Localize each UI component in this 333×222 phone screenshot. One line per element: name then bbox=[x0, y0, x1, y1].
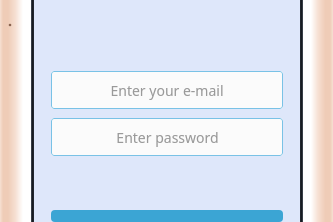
staticText: Enter password bbox=[116, 128, 219, 147]
button[interactable]: Enter password bbox=[51, 118, 283, 156]
staticText: Enter your e-mail bbox=[110, 81, 224, 100]
button[interactable]: Sign in bbox=[51, 210, 283, 222]
button[interactable]: Enter your e-mail bbox=[51, 71, 283, 109]
